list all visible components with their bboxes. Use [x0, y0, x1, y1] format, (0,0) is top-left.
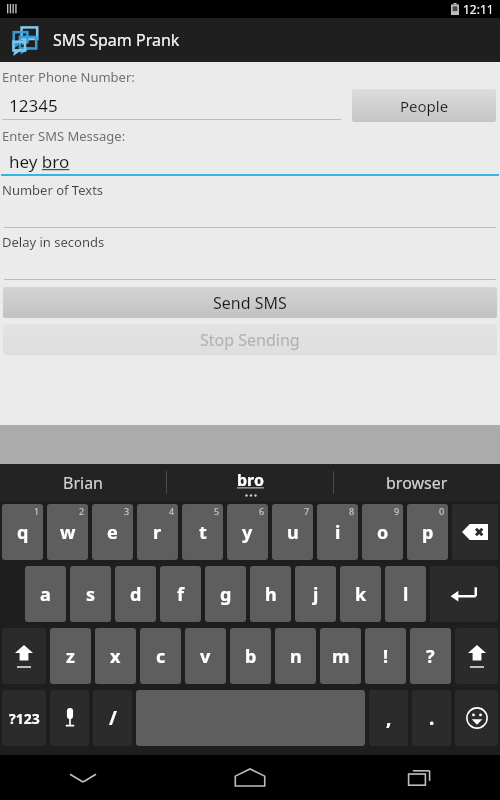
staticText: hey bro [9, 150, 70, 173]
button[interactable]: Shift [455, 628, 498, 684]
staticText: g [220, 582, 232, 607]
staticText: y [242, 520, 253, 545]
button[interactable]: Emoji [455, 690, 498, 746]
staticText: 12345 [9, 94, 58, 117]
button[interactable]: 5 [182, 504, 223, 560]
staticText: Number of Texts [2, 181, 104, 199]
staticText: z [66, 644, 75, 669]
staticText: l [403, 582, 409, 607]
button[interactable]: ?123 [2, 690, 46, 746]
staticText: Enter Phone Number: [2, 68, 135, 86]
staticText: i [335, 520, 341, 545]
button[interactable]: ! [365, 628, 406, 684]
button[interactable]: f [160, 566, 201, 622]
button[interactable]: x [95, 628, 136, 684]
staticText: Delay in seconds [2, 233, 105, 251]
staticText: , [386, 705, 392, 731]
staticText: 8 [349, 505, 355, 517]
staticText: SMS Spam Prank [53, 29, 180, 51]
staticText: 5 [214, 505, 220, 517]
staticText: h [265, 582, 277, 607]
button[interactable]: z [50, 628, 91, 684]
staticText: r [153, 520, 162, 545]
button[interactable]: People [352, 89, 496, 122]
staticText: j [313, 582, 319, 607]
button[interactable]: bro [167, 464, 333, 501]
staticText: Send SMS [213, 292, 287, 314]
button[interactable]: g [205, 566, 246, 622]
staticText: Stop Sending [200, 329, 300, 351]
staticText: 6 [259, 505, 265, 517]
button[interactable]: , [369, 690, 408, 746]
button[interactable]: . [412, 690, 451, 746]
staticText: v [200, 644, 211, 669]
staticText: 3 [124, 505, 130, 517]
button[interactable]: m [320, 628, 361, 684]
button[interactable]: 7 [272, 504, 313, 560]
staticText: browser [386, 472, 448, 494]
staticText: u [287, 520, 299, 545]
button[interactable]: h [250, 566, 291, 622]
button[interactable]: Recent apps [333, 755, 500, 800]
staticText: w [60, 520, 76, 545]
button[interactable]: j [295, 566, 336, 622]
button[interactable]: n [275, 628, 316, 684]
button[interactable]: Stop Sending [3, 324, 497, 355]
button[interactable]: v [185, 628, 226, 684]
staticText: d [130, 582, 142, 607]
button[interactable]: / [93, 690, 132, 746]
staticText: Enter SMS Message: [2, 127, 126, 145]
button[interactable]: s [70, 566, 111, 622]
button[interactable]: k [340, 566, 381, 622]
staticText: b [245, 644, 257, 669]
button[interactable]: 3 [92, 504, 133, 560]
staticText: 9 [394, 505, 400, 517]
button[interactable]: ? [410, 628, 451, 684]
button[interactable]: Home [166, 755, 333, 800]
button[interactable]: 0 [407, 504, 448, 560]
button[interactable]: d [115, 566, 156, 622]
staticText: . [429, 705, 435, 731]
button[interactable]: 6 [227, 504, 268, 560]
button[interactable]: hey bro [9, 148, 500, 174]
button[interactable]: Send SMS [3, 287, 497, 318]
button[interactable]: 2 [47, 504, 88, 560]
button[interactable]: Hide keyboard [0, 755, 166, 800]
staticText: c [156, 644, 166, 669]
button[interactable]: Enter [430, 566, 498, 622]
staticText: n [290, 644, 302, 669]
button[interactable]: Brian [0, 464, 166, 501]
staticText: e [107, 520, 118, 545]
button[interactable]: 8 [317, 504, 358, 560]
staticText: k [355, 582, 367, 607]
staticText: 0 [439, 505, 445, 517]
staticText: 4 [169, 505, 175, 517]
button[interactable]: browser [334, 464, 500, 501]
button[interactable]: b [230, 628, 271, 684]
button[interactable]: 1 [2, 504, 43, 560]
staticText: Brian [63, 472, 104, 494]
staticText: s [86, 582, 96, 607]
button[interactable]: l [385, 566, 426, 622]
staticText: m [332, 644, 350, 669]
staticText: / [109, 705, 117, 731]
staticText: o [377, 520, 389, 545]
button[interactable]: Voice input [50, 690, 89, 746]
staticText: f [177, 582, 184, 607]
button[interactable]: Delete [452, 504, 498, 560]
staticText: 7 [304, 505, 310, 517]
button[interactable]: 9 [362, 504, 403, 560]
staticText: a [40, 582, 51, 607]
button[interactable]: 4 [137, 504, 178, 560]
staticText: People [400, 96, 449, 116]
button[interactable]: c [140, 628, 181, 684]
button[interactable]: a [25, 566, 66, 622]
staticText: t [199, 520, 207, 545]
staticText: ! [383, 644, 389, 669]
staticText: 12:11 [463, 1, 494, 17]
staticText: ?123 [9, 709, 40, 728]
button[interactable]: Shift [2, 628, 46, 684]
staticText: bro [237, 469, 264, 491]
staticText: p [422, 520, 434, 545]
